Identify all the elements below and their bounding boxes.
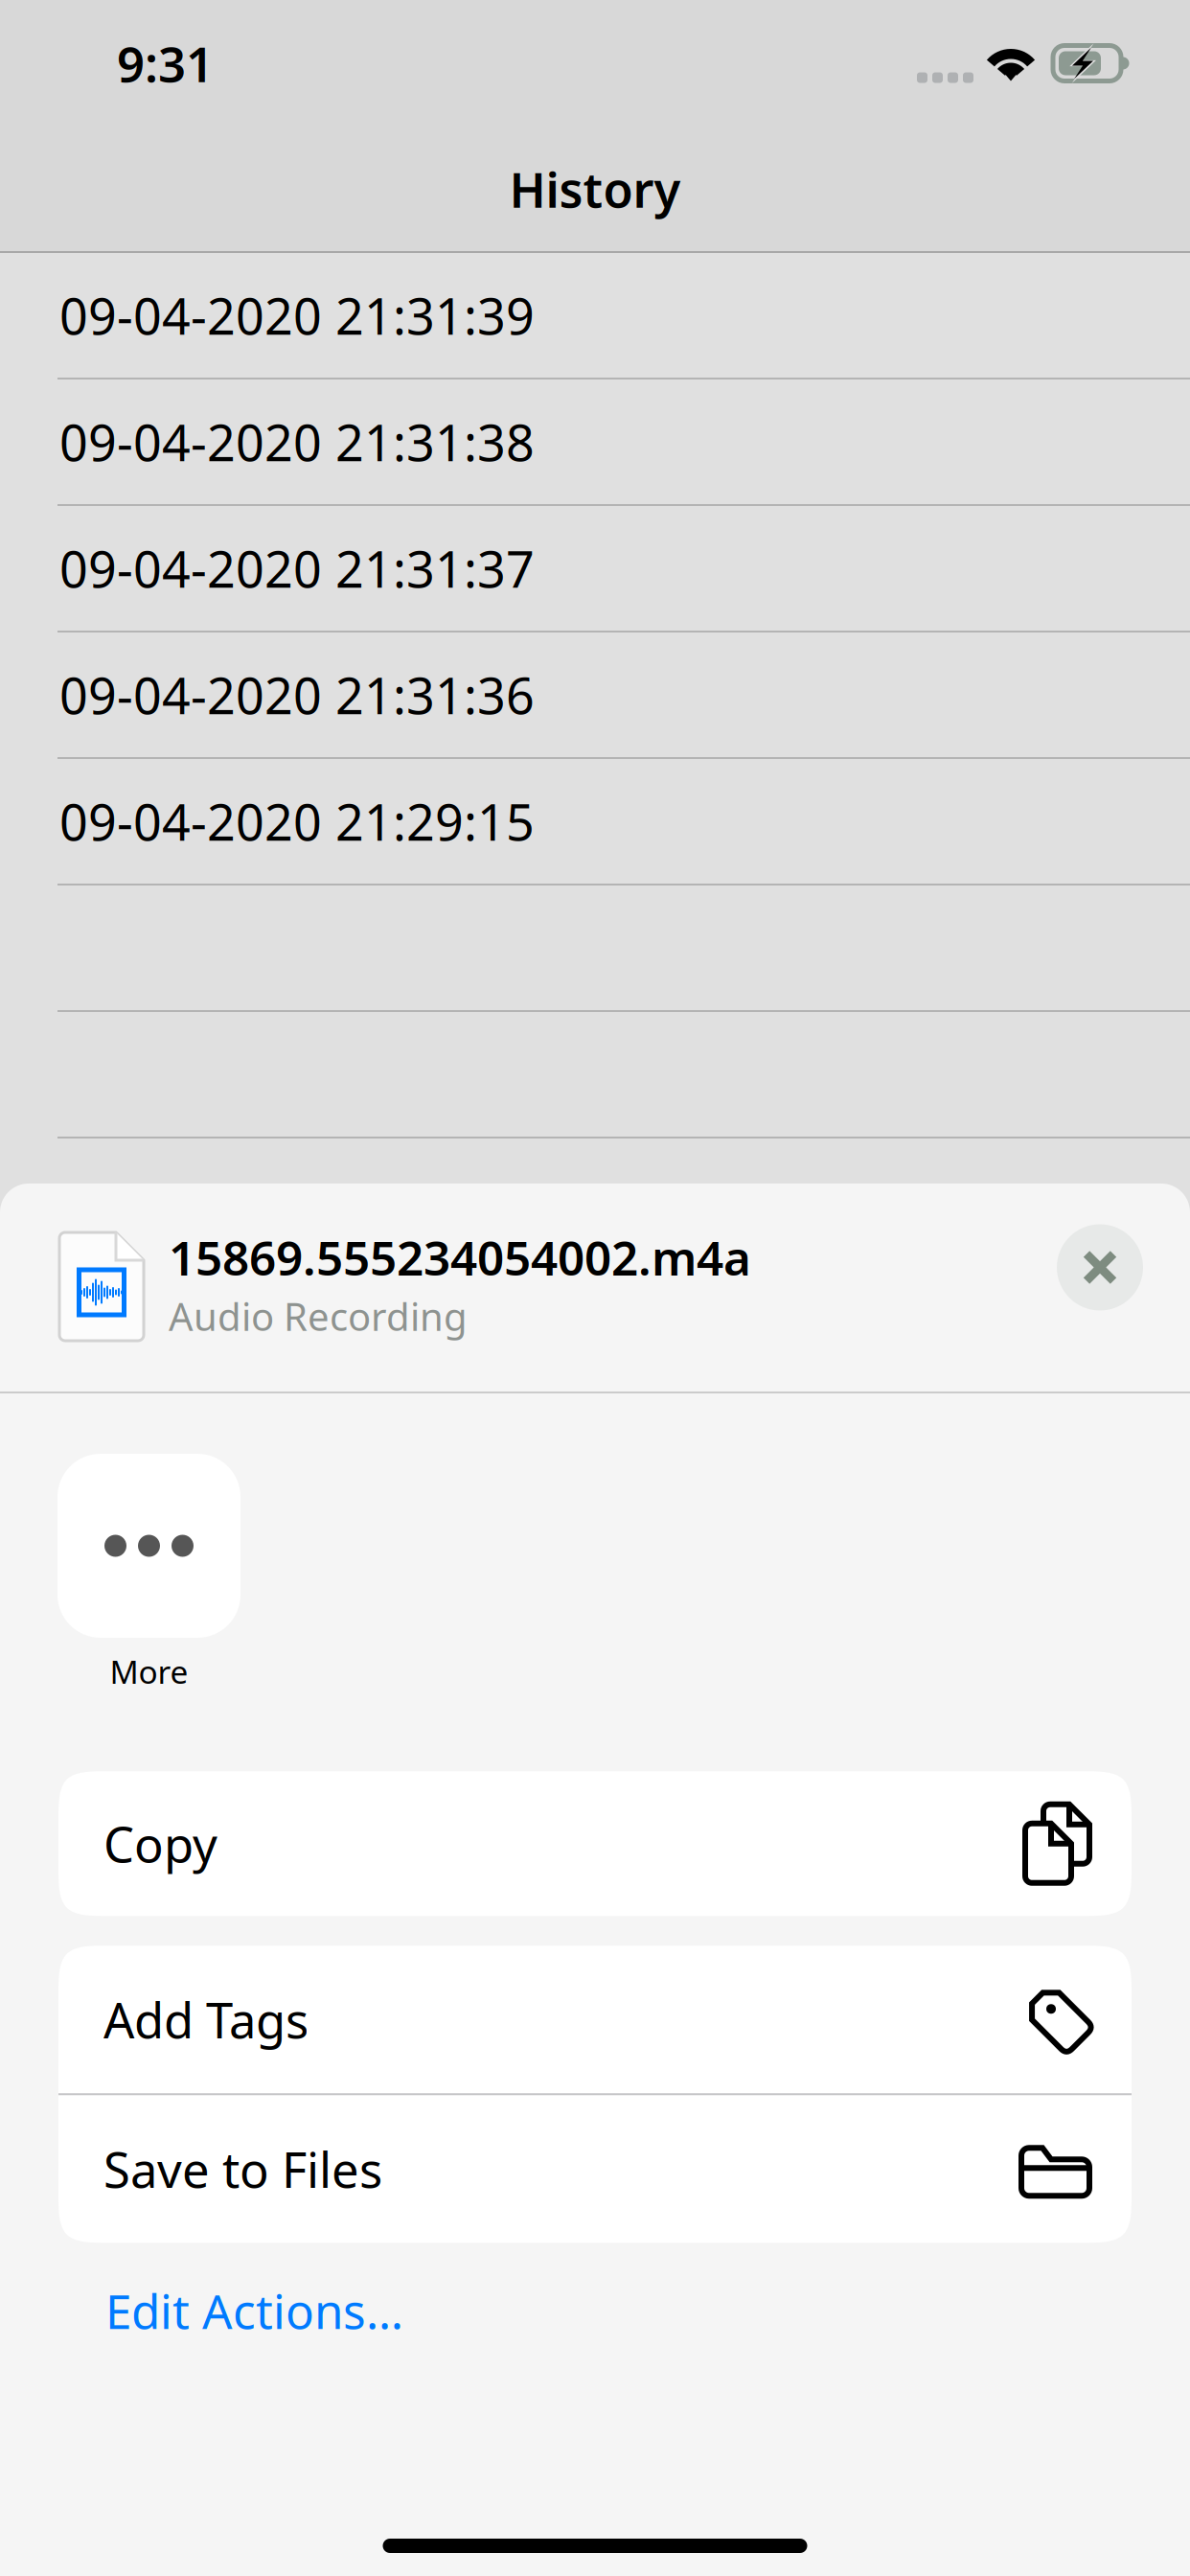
staticText: 9:31 bbox=[117, 31, 214, 96]
staticText: 09-04-2020 21:31:36 bbox=[59, 662, 535, 728]
staticText: Copy bbox=[103, 1811, 217, 1876]
button[interactable]: Add Tags bbox=[58, 1946, 1132, 2093]
staticText: 09-04-2020 21:31:38 bbox=[59, 409, 535, 475]
button[interactable]: More bbox=[57, 1454, 240, 1693]
staticText: Edit Actions… bbox=[105, 2279, 403, 2342]
button[interactable]: 09-04-2020 21:31:37 bbox=[0, 506, 1190, 632]
button[interactable]: Close bbox=[1054, 1242, 1146, 1334]
staticText: 15869.555234054002.m4a bbox=[169, 1226, 751, 1289]
staticText: 09-04-2020 21:31:37 bbox=[59, 535, 535, 601]
button[interactable]: 09-04-2020 21:31:36 bbox=[0, 632, 1190, 759]
button[interactable]: 09-04-2020 21:31:38 bbox=[0, 379, 1190, 506]
staticText: Add Tags bbox=[103, 1987, 309, 2052]
staticText: History bbox=[509, 157, 681, 221]
button[interactable]: 09-04-2020 21:29:15 bbox=[0, 759, 1190, 885]
button[interactable]: Edit Actions… bbox=[105, 2279, 403, 2342]
button[interactable]: Copy bbox=[58, 1771, 1132, 1916]
staticText: 09-04-2020 21:29:15 bbox=[59, 788, 535, 854]
staticText: Save to Files bbox=[103, 2137, 382, 2201]
button[interactable]: 09-04-2020 21:31:39 bbox=[0, 253, 1190, 379]
staticText: 09-04-2020 21:31:39 bbox=[59, 282, 535, 348]
button[interactable]: Save to Files bbox=[58, 2095, 1132, 2243]
staticText: Audio Recording bbox=[169, 1291, 468, 1341]
staticText: More bbox=[110, 1650, 188, 1693]
